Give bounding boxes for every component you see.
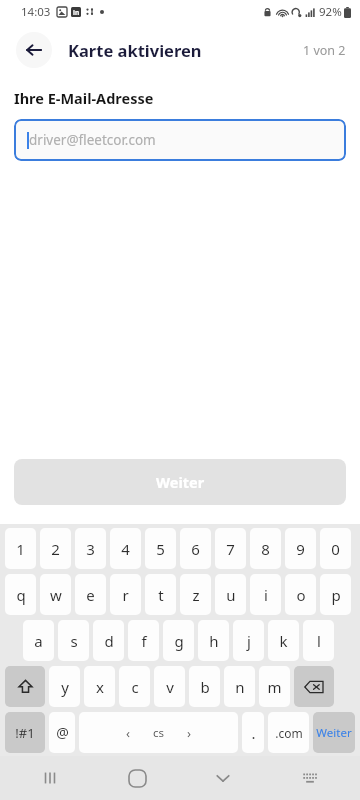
staticText: d xyxy=(104,631,114,651)
staticText: k xyxy=(279,631,288,651)
staticText: j xyxy=(247,631,251,651)
button[interactable]: j xyxy=(233,620,264,661)
staticText: z xyxy=(192,585,200,605)
button[interactable]: Tastatur ausblenden xyxy=(203,758,243,798)
button[interactable]: i xyxy=(250,574,281,615)
button[interactable]: k xyxy=(268,620,299,661)
staticText: f xyxy=(141,631,147,651)
button[interactable]: Zurück xyxy=(16,32,52,68)
staticText: !#1 xyxy=(15,724,35,742)
button[interactable]: 3 xyxy=(75,528,106,569)
staticText: 1 xyxy=(16,539,25,559)
button[interactable]: w xyxy=(40,574,71,615)
button[interactable]: 1 xyxy=(5,528,36,569)
button[interactable]: .com xyxy=(268,712,309,753)
staticText: h xyxy=(209,631,219,651)
staticText: Karte aktivieren xyxy=(68,39,202,61)
button[interactable]: p xyxy=(320,574,351,615)
staticText: q xyxy=(16,585,26,605)
button[interactable]: l xyxy=(303,620,334,661)
button[interactable]: h xyxy=(198,620,229,661)
button[interactable]: Löschen xyxy=(294,666,334,707)
button[interactable]: Leertaste xyxy=(79,712,238,753)
button[interactable]: u xyxy=(215,574,246,615)
staticText: ‹ xyxy=(126,724,131,742)
staticText: driver@fleetcor.com xyxy=(29,131,156,149)
staticText: Weiter xyxy=(316,725,352,741)
button[interactable]: 7 xyxy=(215,528,246,569)
button[interactable]: q xyxy=(5,574,36,615)
button[interactable]: v xyxy=(154,666,185,707)
button[interactable]: @ xyxy=(49,712,75,753)
button[interactable]: Umschalt xyxy=(5,666,45,707)
button[interactable]: t xyxy=(145,574,176,615)
staticText: 7 xyxy=(226,539,235,559)
button[interactable]: x xyxy=(84,666,115,707)
button[interactable]: s xyxy=(58,620,89,661)
button[interactable]: y xyxy=(49,666,80,707)
staticText: b xyxy=(200,677,210,697)
button[interactable]: a xyxy=(23,620,54,661)
staticText: n xyxy=(235,677,245,697)
staticText: 9 xyxy=(296,539,305,559)
button[interactable]: e xyxy=(75,574,106,615)
staticText: u xyxy=(226,585,236,605)
staticText: o xyxy=(296,585,306,605)
staticText: i xyxy=(264,585,268,605)
staticText: 3 xyxy=(86,539,95,559)
staticText: 92% xyxy=(319,4,342,20)
staticText: in xyxy=(73,8,80,17)
button[interactable]: 6 xyxy=(180,528,211,569)
button[interactable]: b xyxy=(189,666,220,707)
staticText: p xyxy=(331,585,341,605)
button[interactable]: 5 xyxy=(145,528,176,569)
button[interactable]: 8 xyxy=(250,528,281,569)
button[interactable]: r xyxy=(110,574,141,615)
staticText: v xyxy=(166,677,174,697)
staticText: a xyxy=(34,631,43,651)
button[interactable]: !#1 xyxy=(5,712,45,753)
staticText: g xyxy=(174,631,184,651)
staticText: @ xyxy=(56,723,69,742)
staticText: Weiter xyxy=(156,472,205,492)
button[interactable]: 2 xyxy=(40,528,71,569)
staticText: y xyxy=(61,677,69,697)
staticText: . xyxy=(251,723,256,743)
button[interactable]: n xyxy=(224,666,255,707)
staticText: s xyxy=(70,631,78,651)
staticText: 14:03 xyxy=(21,4,51,20)
staticText: t xyxy=(158,585,164,605)
button[interactable]: Weiter xyxy=(313,712,355,753)
staticText: 2 xyxy=(51,539,60,559)
staticText: m xyxy=(267,677,282,697)
button[interactable]: 9 xyxy=(285,528,316,569)
button[interactable]: 4 xyxy=(110,528,141,569)
staticText: .com xyxy=(275,725,303,741)
staticText: 1 von 2 xyxy=(303,42,346,59)
staticText: 4 xyxy=(121,539,130,559)
button[interactable]: Tastatur wechseln xyxy=(290,758,330,798)
staticText: 6 xyxy=(191,539,200,559)
button[interactable]: d xyxy=(93,620,124,661)
staticText: w xyxy=(50,585,62,605)
button[interactable]: o xyxy=(285,574,316,615)
button[interactable]: Letzte Apps xyxy=(30,758,70,798)
staticText: l xyxy=(317,631,321,651)
button[interactable]: c xyxy=(119,666,150,707)
staticText: e xyxy=(86,585,95,605)
staticText: c xyxy=(131,677,139,697)
button[interactable]: . xyxy=(242,712,264,753)
staticText: r xyxy=(122,585,129,605)
button[interactable]: f xyxy=(128,620,159,661)
button[interactable]: 0 xyxy=(320,528,351,569)
button[interactable]: m xyxy=(259,666,290,707)
button[interactable]: Weiter xyxy=(14,459,346,505)
staticText: 5 xyxy=(156,539,165,559)
staticText: › xyxy=(187,724,192,742)
staticText: Ihre E-Mail-Adresse xyxy=(14,88,154,108)
button[interactable]: g xyxy=(163,620,194,661)
staticText: x xyxy=(96,677,104,697)
button[interactable]: z xyxy=(180,574,211,615)
button[interactable]: driver@fleetcor.com xyxy=(14,119,346,161)
button[interactable]: Startseite xyxy=(117,758,157,798)
